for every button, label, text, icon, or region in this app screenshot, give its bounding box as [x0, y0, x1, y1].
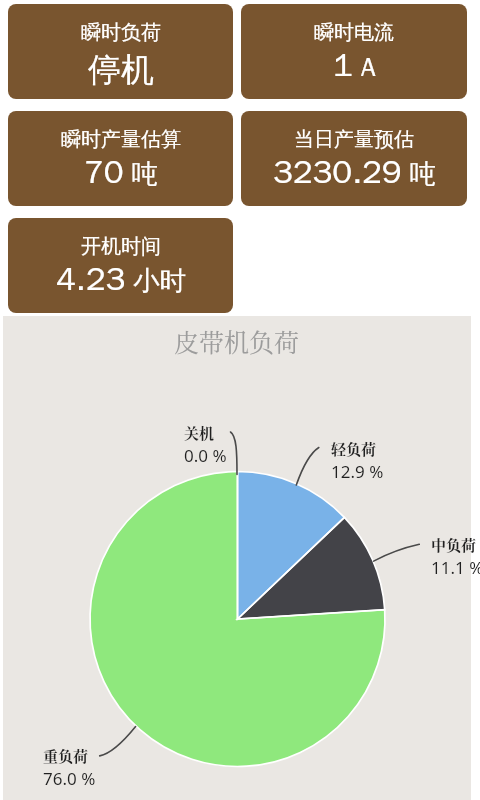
staticText: 停机	[88, 49, 154, 91]
staticText: 1 A	[333, 44, 376, 86]
staticText: 70 吨	[84, 151, 158, 193]
staticText: 关机	[184, 422, 215, 444]
staticText: 轻负荷	[331, 438, 377, 460]
staticText: 皮带机负荷	[174, 323, 300, 359]
staticText: 12.9 %	[331, 460, 384, 483]
staticText: 0.0 %	[184, 444, 227, 467]
staticText: 瞬时电流	[314, 20, 394, 45]
button[interactable]: 开机时间	[8, 218, 233, 313]
staticText: 重负荷	[43, 745, 89, 767]
staticText: 瞬时负荷	[81, 20, 161, 45]
button[interactable]: 当日产量预估	[241, 111, 467, 206]
button[interactable]: 瞬时负荷	[8, 4, 233, 99]
staticText: 中负荷	[431, 534, 477, 556]
staticText: 4.23 小时	[56, 258, 186, 300]
button[interactable]: 瞬时产量估算	[8, 111, 233, 206]
staticText: 开机时间	[81, 234, 161, 259]
staticText: 11.1 %	[431, 556, 480, 579]
staticText: 76.0 %	[43, 767, 96, 790]
button[interactable]: 瞬时电流	[241, 4, 467, 99]
staticText: 当日产量预估	[294, 127, 414, 152]
staticText: 3230.29 吨	[273, 151, 436, 193]
staticText: 瞬时产量估算	[61, 127, 181, 152]
